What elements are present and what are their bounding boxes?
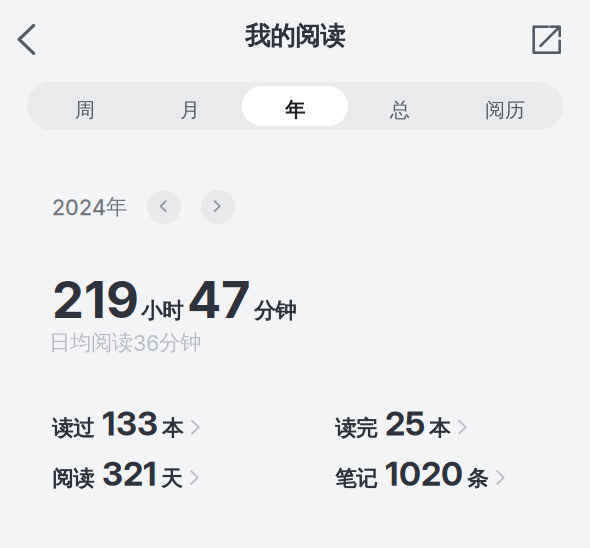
button[interactable]: Back: [0, 10, 56, 72]
staticText: 1020: [385, 453, 463, 494]
button[interactable]: Share: [519, 10, 590, 72]
staticText: 25: [385, 403, 425, 443]
staticText: 周: [75, 97, 95, 123]
button[interactable]: 月: [137, 82, 242, 130]
staticText: 读过: [52, 415, 94, 442]
staticText: 133: [102, 403, 158, 443]
staticText: 小时: [141, 297, 183, 324]
staticText: 条: [467, 465, 488, 492]
button[interactable]: 读过: [52, 403, 201, 443]
button[interactable]: 年: [242, 82, 347, 130]
staticText: 47: [187, 269, 250, 330]
staticText: 总: [390, 97, 410, 123]
staticText: 本: [162, 415, 183, 442]
staticText: 阅历: [485, 97, 525, 123]
staticText: 月: [180, 97, 200, 123]
staticText: 219: [52, 269, 139, 330]
staticText: 读完: [335, 415, 377, 442]
button[interactable]: 周: [32, 82, 137, 130]
button[interactable]: 阅历: [452, 82, 557, 130]
staticText: 笔记: [335, 465, 377, 492]
button[interactable]: 读完: [335, 403, 468, 443]
staticText: 2024年: [52, 194, 127, 220]
staticText: 321: [102, 453, 157, 494]
button[interactable]: 笔记: [335, 453, 506, 494]
staticText: 日均阅读36分钟: [49, 329, 201, 356]
staticText: 天: [161, 465, 182, 492]
button[interactable]: 总: [347, 82, 452, 130]
button[interactable]: Next year: [201, 190, 235, 224]
staticText: 年: [285, 97, 305, 123]
staticText: 本: [429, 415, 450, 442]
button[interactable]: Previous year: [147, 190, 181, 224]
button[interactable]: 阅读: [52, 453, 200, 494]
staticText: 阅读: [52, 465, 94, 492]
staticText: 我的阅读: [245, 20, 345, 52]
staticText: 分钟: [254, 297, 296, 324]
